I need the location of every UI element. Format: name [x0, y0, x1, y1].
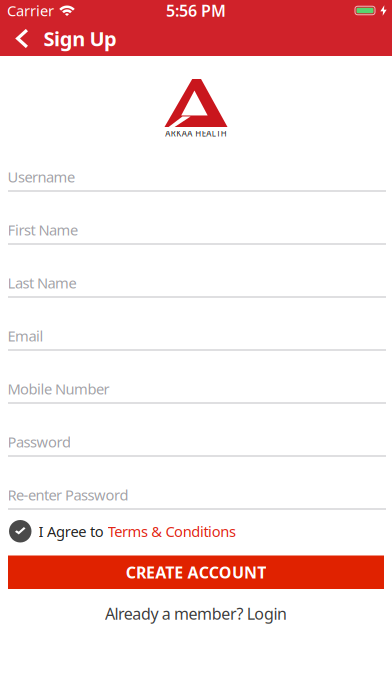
button[interactable]: First Name	[0, 191, 392, 244]
button[interactable]: Re-enter Password	[0, 456, 392, 509]
staticText: 5:56 PM	[166, 0, 226, 21]
button[interactable]: Mobile Number	[0, 350, 392, 403]
button[interactable]: Last Name	[0, 244, 392, 297]
staticText: Email	[7, 326, 43, 345]
staticText: Last Name	[7, 273, 76, 292]
staticText: Sign Up	[43, 25, 117, 52]
button[interactable]: CREATE ACCOUNT	[0, 555, 392, 589]
staticText: Already a member? Login	[105, 603, 287, 624]
staticText: Password	[7, 432, 71, 451]
staticText: Username	[7, 167, 75, 186]
button[interactable]: Already a member? Login	[105, 589, 287, 624]
button[interactable]: Back	[0, 28, 28, 48]
button[interactable]: I agree checkbox	[9, 520, 31, 542]
staticText: Mobile Number	[7, 379, 109, 398]
staticText: I Agree to	[38, 521, 104, 541]
staticText: ARKAA HEALTH	[165, 128, 227, 139]
staticText: Terms & Conditions	[108, 521, 236, 541]
button[interactable]: Username	[0, 138, 392, 191]
staticText: Re-enter Password	[7, 485, 128, 504]
staticText: Carrier	[7, 1, 54, 20]
button[interactable]: Password	[0, 403, 392, 456]
button[interactable]: Terms & Conditions	[104, 521, 236, 541]
staticText: CREATE ACCOUNT	[126, 562, 266, 583]
button[interactable]: Email	[0, 297, 392, 350]
staticText: First Name	[7, 220, 78, 239]
